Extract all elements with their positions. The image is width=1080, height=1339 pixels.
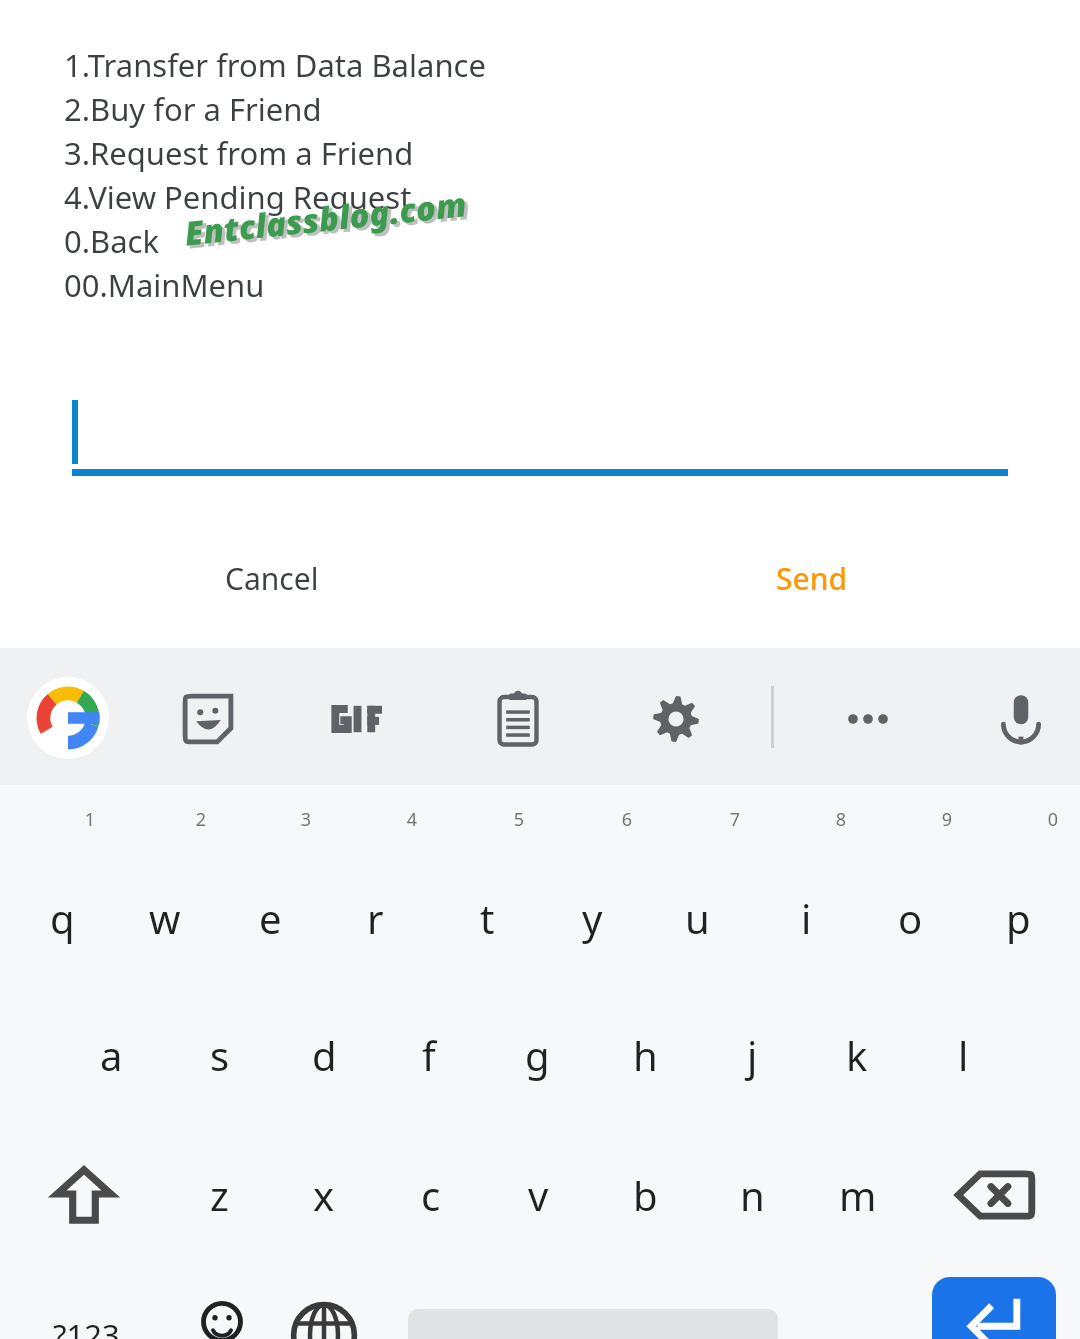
button[interactable]: ?123 xyxy=(11,1270,161,1339)
staticText: 3 xyxy=(294,807,318,832)
button[interactable]: y xyxy=(540,853,644,983)
staticText: a xyxy=(100,1028,123,1082)
button[interactable]: Cancel xyxy=(140,542,404,614)
button[interactable]: Change language xyxy=(275,1270,373,1339)
staticText: o xyxy=(898,891,923,945)
button[interactable]: r xyxy=(323,853,427,983)
staticText: 7 xyxy=(723,807,747,832)
staticText: g xyxy=(525,1028,550,1082)
staticText: r xyxy=(367,891,384,945)
button[interactable]: q xyxy=(10,853,114,983)
button[interactable]: z xyxy=(167,1130,271,1260)
staticText: 00.MainMenu xyxy=(64,264,265,306)
staticText: b xyxy=(633,1168,658,1222)
button[interactable]: Voice input xyxy=(977,675,1065,763)
staticText: 5 xyxy=(507,807,531,832)
button[interactable]: j xyxy=(700,990,804,1120)
staticText: p xyxy=(1006,891,1031,945)
button[interactable]: o xyxy=(858,853,962,983)
button[interactable]: Backspace xyxy=(935,1130,1055,1260)
staticText: 0 xyxy=(1041,807,1065,832)
staticText: 4.View Pending Request xyxy=(64,176,412,218)
button[interactable]: h xyxy=(593,990,697,1120)
staticText: 8 xyxy=(829,807,853,832)
button[interactable]: x xyxy=(272,1130,376,1260)
staticText: y xyxy=(582,891,603,945)
button[interactable]: s xyxy=(168,990,272,1120)
button[interactable]: f xyxy=(377,990,481,1120)
staticText: w xyxy=(149,891,181,945)
button[interactable]: a xyxy=(59,990,163,1120)
staticText: Send xyxy=(776,558,848,599)
staticText: i xyxy=(801,891,812,945)
staticText: d xyxy=(312,1028,337,1082)
staticText: x xyxy=(313,1168,335,1222)
button[interactable]: i xyxy=(754,853,858,983)
staticText: 2.Buy for a Friend xyxy=(64,88,322,130)
button[interactable]: g xyxy=(485,990,589,1120)
staticText: u xyxy=(685,891,710,945)
button[interactable]: b xyxy=(593,1130,697,1260)
button[interactable]: Space xyxy=(390,1270,796,1339)
staticText: ?123 xyxy=(53,1314,120,1339)
staticText: j xyxy=(747,1028,758,1082)
staticText: z xyxy=(210,1168,229,1222)
button[interactable]: GIF xyxy=(318,675,406,763)
staticText: h xyxy=(633,1028,658,1082)
staticText: c xyxy=(421,1168,441,1222)
button[interactable]: n xyxy=(700,1130,804,1260)
button[interactable]: Enter xyxy=(932,1277,1056,1339)
button[interactable]: Emoji xyxy=(172,1270,272,1339)
button[interactable]: t xyxy=(435,853,539,983)
staticText: n xyxy=(740,1168,765,1222)
staticText: f xyxy=(422,1028,436,1082)
button[interactable]: Shift xyxy=(24,1130,144,1260)
button[interactable]: u xyxy=(645,853,749,983)
button[interactable]: Clipboard xyxy=(474,675,562,763)
button[interactable]: Send xyxy=(680,542,944,614)
button[interactable]: Settings xyxy=(632,675,720,763)
staticText: Entclassblog.com xyxy=(182,181,469,256)
button[interactable]: w xyxy=(113,853,217,983)
staticText: 9 xyxy=(935,807,959,832)
staticText: v xyxy=(528,1168,549,1222)
staticText: 6 xyxy=(615,807,639,832)
button[interactable]: Google search xyxy=(27,677,109,759)
button[interactable]: p xyxy=(966,853,1070,983)
staticText: t xyxy=(480,891,495,945)
staticText: 3.Request from a Friend xyxy=(64,132,414,174)
button[interactable]: v xyxy=(486,1130,590,1260)
staticText: l xyxy=(958,1028,969,1082)
staticText: 0.Back xyxy=(64,220,160,262)
button[interactable]: e xyxy=(218,853,322,983)
staticText: Cancel xyxy=(225,558,319,599)
button[interactable]: l xyxy=(911,990,1015,1120)
staticText: 1.Transfer from Data Balance xyxy=(64,44,486,86)
staticText: s xyxy=(210,1028,230,1082)
button[interactable]: Stickers xyxy=(164,675,252,763)
button[interactable]: More options xyxy=(824,675,912,763)
staticText: m xyxy=(839,1168,877,1222)
button[interactable]: m xyxy=(806,1130,910,1260)
staticText: 4 xyxy=(400,807,424,832)
staticText: e xyxy=(259,891,282,945)
staticText: q xyxy=(50,891,75,945)
staticText: 1 xyxy=(78,807,102,832)
staticText: k xyxy=(846,1028,868,1082)
button[interactable]: d xyxy=(272,990,376,1120)
staticText: 2 xyxy=(189,807,213,832)
button[interactable]: k xyxy=(805,990,909,1120)
staticText: Entclassblog.com xyxy=(186,184,472,258)
button[interactable]: c xyxy=(379,1130,483,1260)
